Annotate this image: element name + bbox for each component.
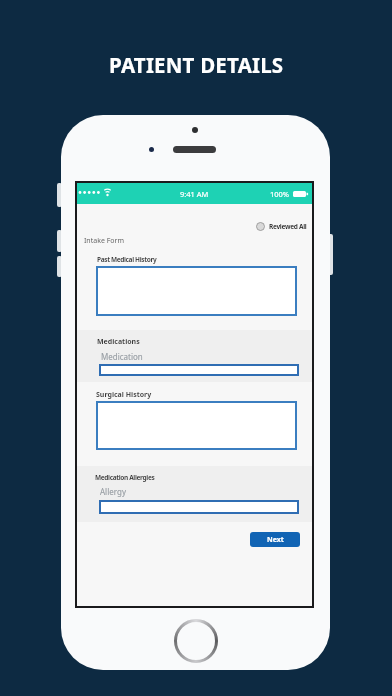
button[interactable] — [96, 266, 297, 316]
staticText: Intake Form — [84, 236, 124, 246]
staticText: Allergy — [100, 486, 126, 497]
button[interactable] — [256, 222, 265, 231]
staticText: Past Medical History — [97, 255, 157, 264]
button[interactable] — [99, 500, 299, 514]
staticText: 100% — [270, 189, 290, 199]
staticText: Medications — [97, 337, 140, 347]
staticText: Reviewed All — [269, 222, 307, 231]
button[interactable] — [99, 364, 299, 376]
staticText: Medication Allergies — [95, 473, 155, 482]
staticText: Surgical History — [96, 390, 152, 400]
button[interactable]: Next — [250, 532, 300, 547]
staticText: PATIENT DETAILS — [109, 51, 284, 79]
button[interactable] — [96, 401, 297, 450]
staticText: Medication — [101, 351, 143, 362]
staticText: Next — [267, 535, 284, 545]
staticText: 9:41 AM — [180, 189, 209, 199]
